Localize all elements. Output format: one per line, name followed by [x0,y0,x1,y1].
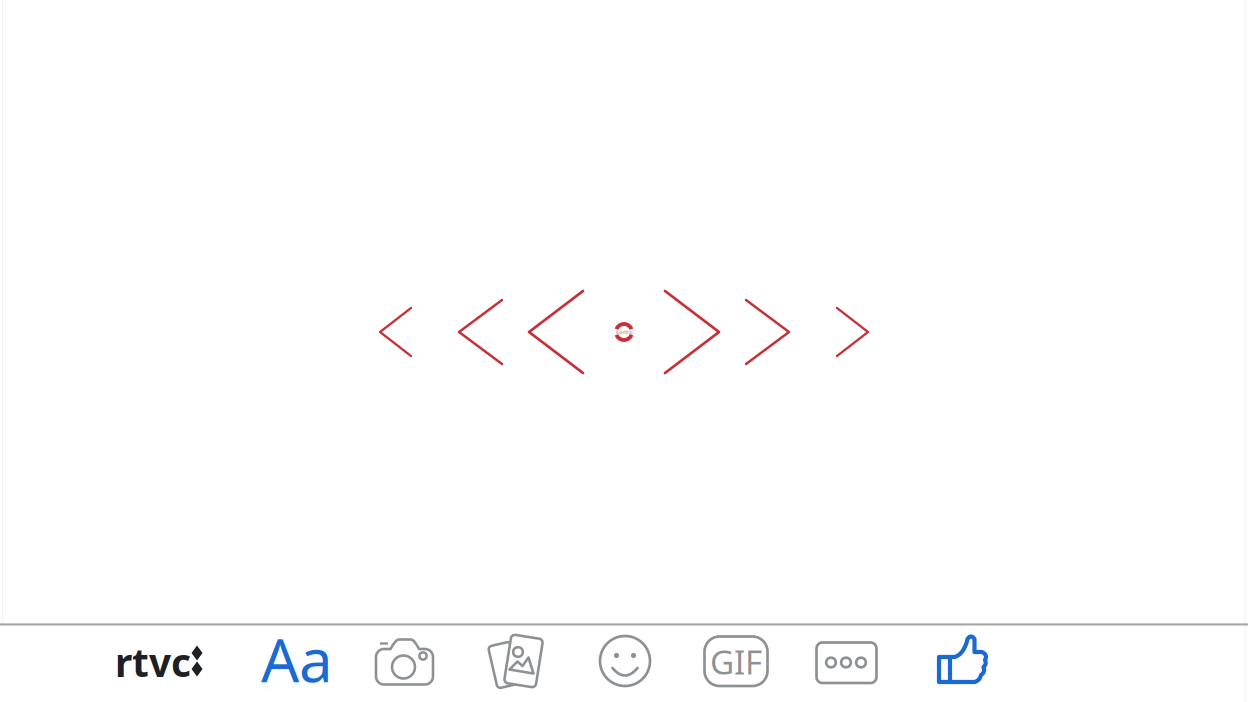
staticText: loading [615,328,632,336]
button[interactable]: Text formatting [251,625,337,699]
staticText: GIF [710,639,762,684]
staticText: Aa [261,619,333,699]
staticText: rtvc [115,636,191,688]
button[interactable]: RTVC [118,625,204,699]
button[interactable]: GIF [693,625,779,699]
button[interactable]: Photos [472,625,558,699]
button[interactable]: Like [919,625,1005,699]
button[interactable]: Stickers [582,625,668,699]
button[interactable]: More [803,625,889,699]
button[interactable]: Camera [362,625,448,699]
